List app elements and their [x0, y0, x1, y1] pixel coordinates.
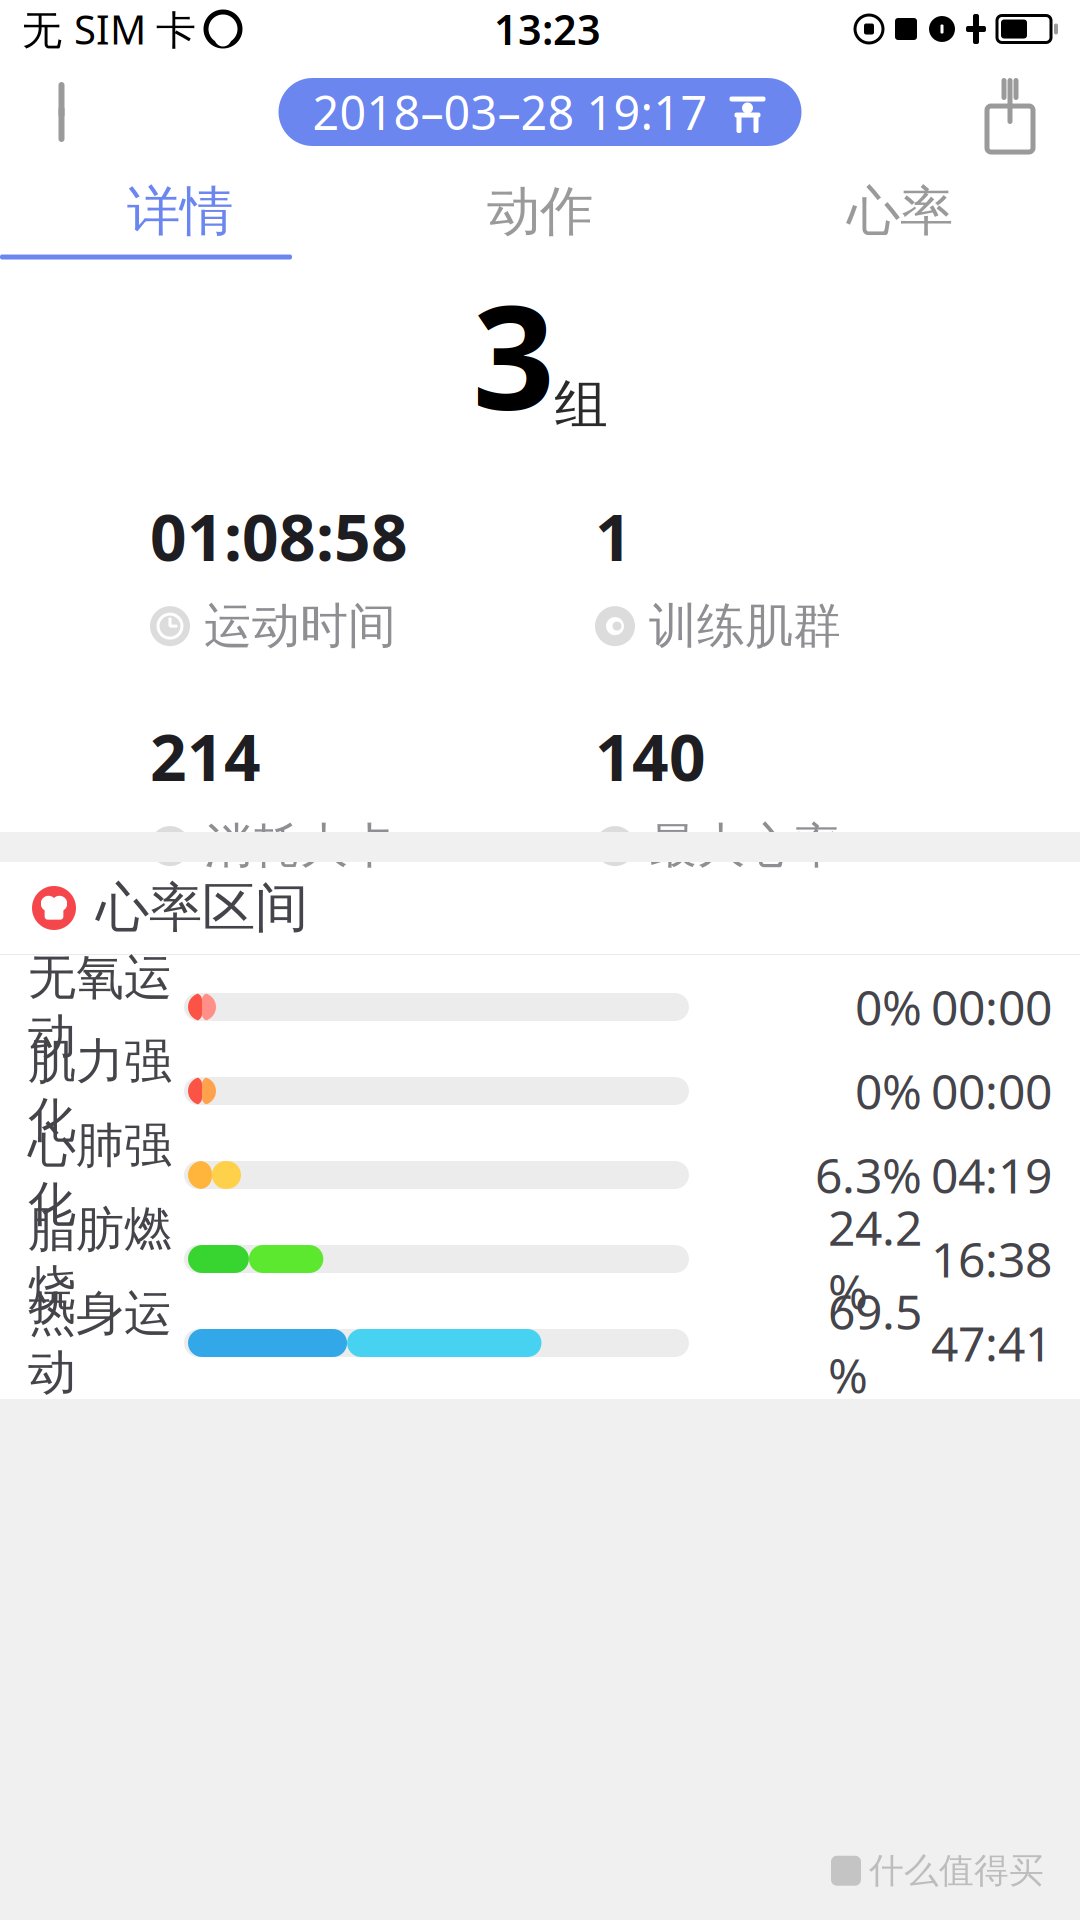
- staticText: 运动时间: [204, 597, 396, 656]
- staticText: 47:41: [931, 1311, 1052, 1375]
- staticText: 140: [595, 714, 706, 799]
- staticText: 69.5%: [828, 1279, 922, 1407]
- staticText: 心率区间: [96, 875, 308, 941]
- staticText: 消耗大卡: [204, 817, 396, 876]
- staticText: 无 SIM 卡: [22, 2, 196, 55]
- staticText: 心肺强化: [28, 1116, 172, 1234]
- button[interactable]: 详情: [0, 168, 360, 254]
- staticText: 肌力强化: [28, 1032, 172, 1150]
- staticText: 214: [150, 714, 261, 799]
- staticText: 什么值得买: [869, 1849, 1044, 1892]
- button[interactable]: Share: [965, 67, 1055, 157]
- staticText: 00:00: [931, 1059, 1052, 1123]
- staticText: 13:23: [494, 2, 601, 56]
- staticText: 脂肪燃烧: [28, 1200, 172, 1318]
- button[interactable]: 2018–03–28 19:17: [278, 78, 801, 146]
- staticText: 0%: [855, 1059, 922, 1123]
- staticText: 00:00: [931, 975, 1052, 1039]
- staticText: 0%: [855, 975, 922, 1039]
- staticText: 热身运动: [28, 1284, 172, 1402]
- button[interactable]: 心率: [720, 168, 1080, 254]
- staticText: 1: [595, 494, 632, 579]
- staticText: 01:08:58: [150, 494, 408, 579]
- staticText: 组: [554, 372, 607, 438]
- staticText: 6.3%: [815, 1143, 922, 1207]
- staticText: 无氧运动: [28, 948, 172, 1066]
- staticText: 详情: [127, 179, 233, 244]
- staticText: 16:38: [931, 1227, 1052, 1291]
- staticText: 心率: [847, 179, 953, 244]
- staticText: 训练肌群: [649, 597, 841, 656]
- button[interactable]: 动作: [360, 168, 720, 254]
- staticText: 3: [472, 258, 554, 450]
- staticText: 最大心率: [649, 817, 841, 876]
- staticText: 动作: [487, 179, 593, 244]
- staticText: 2018–03–28 19:17: [312, 81, 707, 143]
- staticText: 04:19: [931, 1143, 1052, 1207]
- staticText: 24.2%: [828, 1195, 922, 1323]
- button[interactable]: Back: [25, 67, 115, 157]
